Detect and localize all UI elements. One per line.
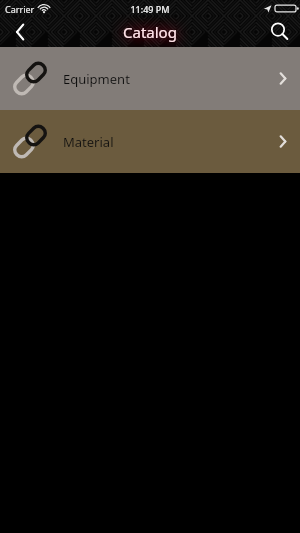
- button[interactable]: Back: [0, 17, 42, 47]
- button[interactable]: Search: [260, 17, 300, 47]
- button[interactable]: Equipment: [0, 47, 300, 110]
- staticText: Material: [63, 133, 114, 151]
- staticText: Carrier: [5, 3, 35, 15]
- staticText: Equipment: [63, 70, 130, 88]
- staticText: 11:49 PM: [130, 3, 170, 15]
- button[interactable]: Material: [0, 110, 300, 173]
- staticText: Catalog: [123, 22, 177, 42]
